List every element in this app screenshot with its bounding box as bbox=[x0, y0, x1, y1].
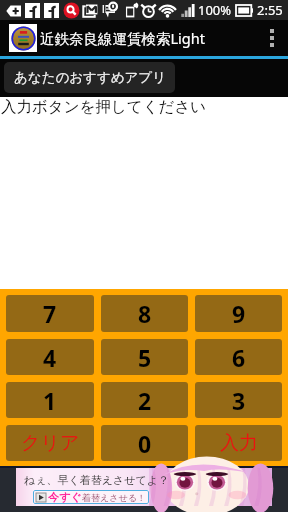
staticText: 4 bbox=[43, 342, 57, 373]
button[interactable]: 9 bbox=[195, 295, 282, 332]
staticText: 3 bbox=[232, 385, 246, 416]
button[interactable]: 3 bbox=[195, 382, 282, 418]
staticText: クリア bbox=[21, 431, 80, 455]
button[interactable]: 5 bbox=[101, 339, 188, 375]
button[interactable]: あなたのおすすめアプリ bbox=[4, 62, 175, 93]
staticText: 9 bbox=[232, 298, 246, 329]
button[interactable]: 0 bbox=[101, 425, 188, 461]
button[interactable]: 4 bbox=[6, 339, 94, 375]
staticText: 1 bbox=[43, 385, 57, 416]
button[interactable]: More options bbox=[256, 20, 288, 56]
staticText: 2 bbox=[138, 385, 152, 416]
staticText: 0 bbox=[138, 428, 152, 459]
staticText: 100% bbox=[198, 1, 232, 19]
staticText: 今すぐ bbox=[48, 490, 82, 504]
button[interactable]: 1 bbox=[6, 382, 94, 418]
button[interactable]: Advertisement bbox=[16, 468, 272, 506]
button[interactable]: 7 bbox=[6, 295, 94, 332]
button[interactable]: 入力 bbox=[195, 425, 282, 461]
button[interactable]: 2 bbox=[101, 382, 188, 418]
staticText: 7 bbox=[43, 298, 57, 329]
staticText: 6 bbox=[232, 342, 246, 373]
staticText: 2:55 bbox=[257, 1, 283, 19]
button[interactable]: クリア bbox=[6, 425, 94, 461]
staticText: 入力 bbox=[220, 431, 258, 455]
staticText: 8 bbox=[138, 298, 152, 329]
button[interactable]: 6 bbox=[195, 339, 282, 375]
staticText: あなたのおすすめアプリ bbox=[14, 69, 166, 86]
staticText: 入力ボタンを押してください bbox=[1, 97, 207, 117]
staticText: ねぇ、早く着替えさせてよ？ bbox=[24, 473, 170, 487]
staticText: 5 bbox=[138, 342, 152, 373]
staticText: 着替えさせる！ bbox=[82, 492, 146, 503]
staticText: 近鉄奈良線運賃検索Light bbox=[40, 28, 205, 48]
button[interactable]: 8 bbox=[101, 295, 188, 332]
